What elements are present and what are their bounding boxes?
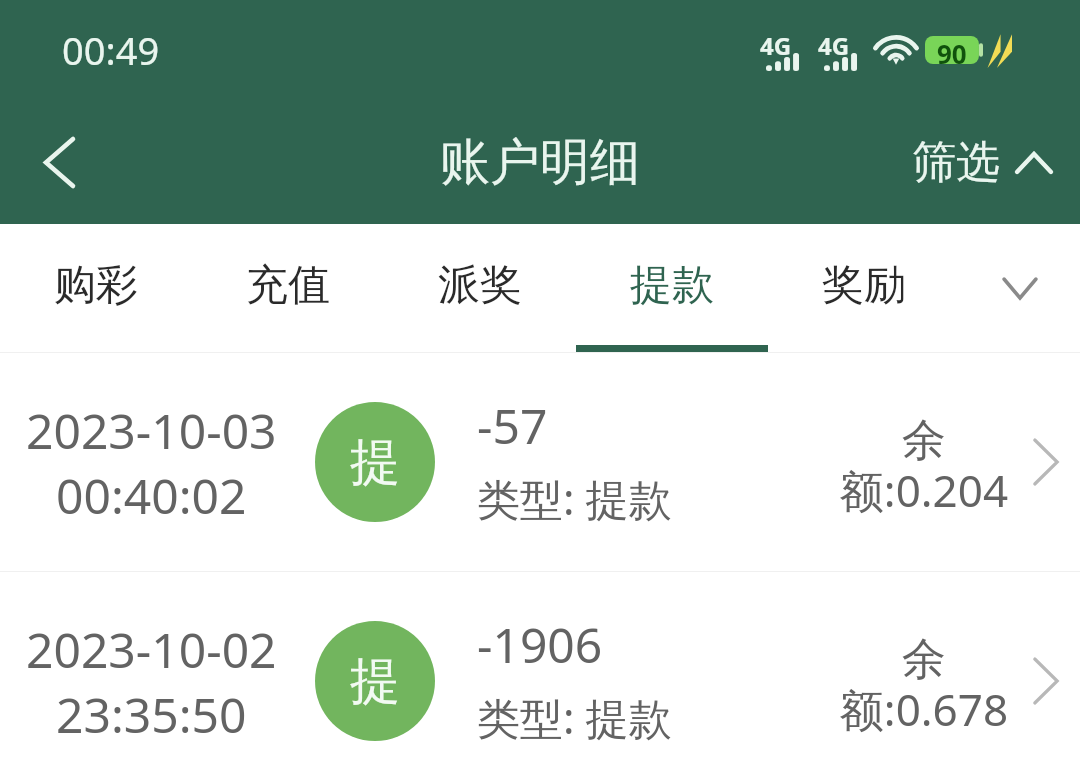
staticText: 4G xyxy=(818,29,850,62)
button[interactable]: 2023-10-02 xyxy=(0,572,1080,780)
staticText: 派奖 xyxy=(438,259,522,312)
button[interactable]: 充值 xyxy=(192,224,384,352)
staticText: 90 xyxy=(937,36,967,64)
staticText: -57 xyxy=(477,393,548,458)
staticText: 00:40:02 xyxy=(56,463,247,528)
staticText: 4G xyxy=(760,29,792,62)
staticText: -1906 xyxy=(477,612,603,677)
staticText: 余额:0.678 xyxy=(838,632,1010,739)
button[interactable]: 提款 xyxy=(576,224,768,352)
staticText: 类型: 提款 xyxy=(477,688,672,747)
staticText: 账户明细 xyxy=(440,131,640,194)
staticText: 提 xyxy=(350,431,400,494)
button[interactable]: 派奖 xyxy=(384,224,576,352)
button[interactable]: More tabs xyxy=(960,224,1080,352)
staticText: 2023-10-03 xyxy=(26,398,277,463)
staticText: 2023-10-02 xyxy=(26,617,277,682)
staticText: 充值 xyxy=(246,259,330,312)
button[interactable]: 奖励 xyxy=(768,224,960,352)
staticText: 奖励 xyxy=(822,259,906,312)
button[interactable]: 2023-10-03 xyxy=(0,353,1080,571)
staticText: 23:35:50 xyxy=(56,682,247,747)
button[interactable]: Back xyxy=(0,103,118,221)
button[interactable]: 筛选 xyxy=(888,107,1080,218)
staticText: 类型: 提款 xyxy=(477,469,672,528)
staticText: 00:49 xyxy=(62,24,160,76)
staticText: 筛选 xyxy=(912,135,1000,190)
staticText: 提款 xyxy=(630,259,714,312)
staticText: 购彩 xyxy=(54,259,138,312)
button[interactable]: 购彩 xyxy=(0,224,192,352)
staticText: 提 xyxy=(350,650,400,713)
staticText: 余额:0.204 xyxy=(838,413,1010,520)
